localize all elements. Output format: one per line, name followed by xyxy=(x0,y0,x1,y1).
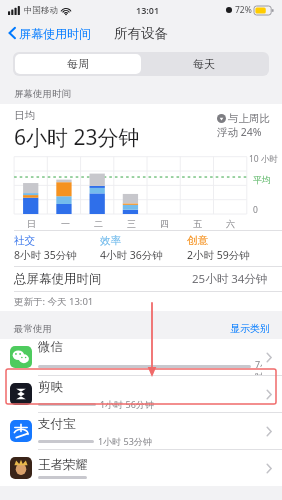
staticText: 每周 xyxy=(67,57,89,71)
button[interactable]: 剪映 xyxy=(0,376,282,412)
staticText: 三 xyxy=(127,218,136,229)
staticText: 屏幕使用时间 xyxy=(19,26,91,41)
staticText: 中国移动 xyxy=(24,5,58,16)
staticText: 10 小时 xyxy=(249,153,278,165)
staticText: 所有设备 xyxy=(114,25,168,42)
button[interactable]: 总屏幕使用时间 xyxy=(14,267,268,291)
staticText: 日均 xyxy=(14,109,35,122)
staticText: 最常使用 xyxy=(14,323,52,335)
staticText: 13:01 xyxy=(136,4,160,16)
staticText: 社交 xyxy=(14,234,35,247)
staticText: 4小时 36分钟 xyxy=(100,248,163,262)
staticText: 浮动 24% xyxy=(217,125,262,139)
staticText: 与上周比 xyxy=(228,112,270,125)
staticText: 6小时 23分钟 xyxy=(14,123,140,152)
staticText: 王者荣耀 xyxy=(38,457,88,473)
staticText: 1小时 53分钟 xyxy=(98,435,152,447)
staticText: 六 xyxy=(226,218,235,229)
staticText: 四 xyxy=(160,218,169,229)
staticText: 1小时 56分钟 xyxy=(100,398,154,410)
staticText: 一 xyxy=(61,218,70,229)
staticText: 剪映 xyxy=(38,379,63,395)
staticText: 二 xyxy=(94,218,103,229)
button[interactable]: 王者荣耀 xyxy=(0,450,282,486)
staticText: 创意 xyxy=(187,234,208,247)
staticText: 日 xyxy=(27,218,36,229)
staticText: 总屏幕使用时间 xyxy=(14,271,102,287)
staticText: 支付宝 xyxy=(38,416,76,432)
button[interactable]: 每天 xyxy=(141,54,267,74)
button[interactable]: 显示类别 xyxy=(230,322,270,335)
button[interactable]: 屏幕使用时间 xyxy=(6,20,93,46)
staticText: 每天 xyxy=(193,57,215,71)
staticText: 显示类别 xyxy=(230,322,270,335)
staticText: 0 xyxy=(253,204,258,216)
staticText: 屏幕使用时间 xyxy=(14,88,71,100)
button[interactable]: 微信 xyxy=(0,339,282,375)
staticText: 平均 xyxy=(253,174,271,185)
staticText: 72% xyxy=(235,4,252,16)
staticText: 效率 xyxy=(100,234,121,247)
staticText: 7小时 51分钟 xyxy=(255,358,262,375)
staticText: 更新于: 今天 13:01 xyxy=(14,295,94,308)
button[interactable]: 支付宝 xyxy=(0,413,282,449)
staticText: 8小时 35分钟 xyxy=(14,248,77,262)
button[interactable]: 每周 xyxy=(15,54,141,74)
staticText: 25小时 34分钟 xyxy=(192,271,268,287)
staticText: 2小时 59分钟 xyxy=(187,248,250,262)
staticText: 微信 xyxy=(38,339,63,355)
staticText: 五 xyxy=(193,218,202,229)
